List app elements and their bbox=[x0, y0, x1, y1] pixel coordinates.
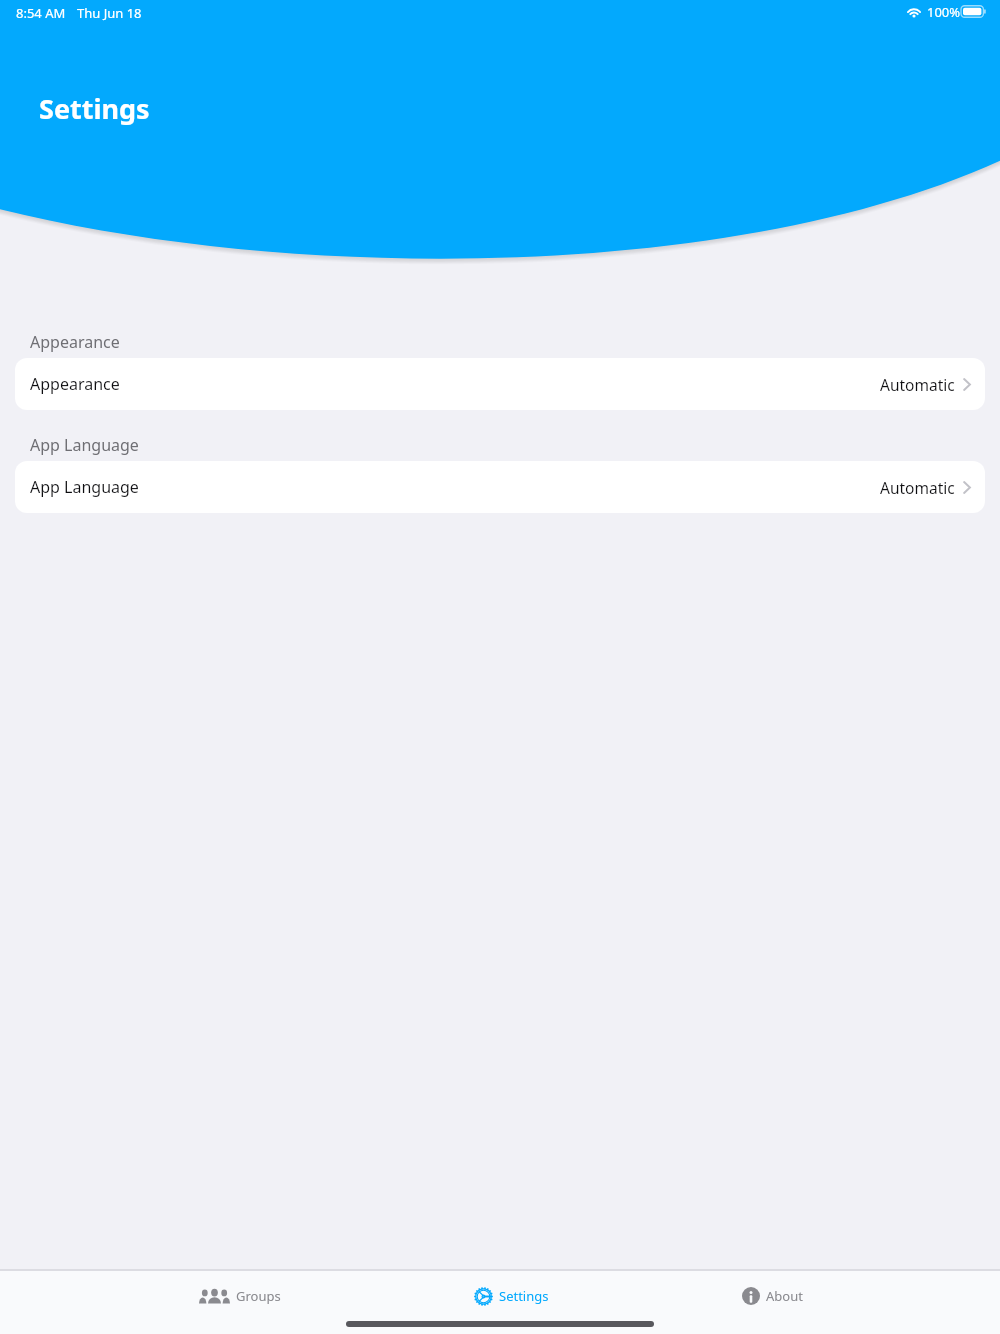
staticText: App Language bbox=[30, 434, 139, 456]
button[interactable]: Groups bbox=[0, 1271, 334, 1321]
staticText: Groups bbox=[236, 1287, 281, 1305]
button[interactable]: About bbox=[667, 1271, 1000, 1321]
staticText: Thu Jun 18 bbox=[77, 4, 142, 22]
staticText: Appearance bbox=[30, 331, 120, 353]
staticText: Automatic bbox=[880, 477, 955, 498]
staticText: Settings bbox=[499, 1287, 549, 1305]
staticText: App Language bbox=[30, 476, 139, 498]
staticText: Appearance bbox=[30, 373, 120, 395]
button[interactable]: Appearance bbox=[15, 358, 985, 410]
button[interactable]: Settings bbox=[334, 1271, 667, 1321]
button[interactable]: App Language bbox=[15, 461, 985, 513]
staticText: Settings bbox=[39, 90, 150, 127]
staticText: 8:54 AM bbox=[16, 4, 66, 22]
staticText: About bbox=[766, 1287, 803, 1305]
staticText: 100% bbox=[927, 3, 961, 21]
staticText: Automatic bbox=[880, 374, 955, 395]
